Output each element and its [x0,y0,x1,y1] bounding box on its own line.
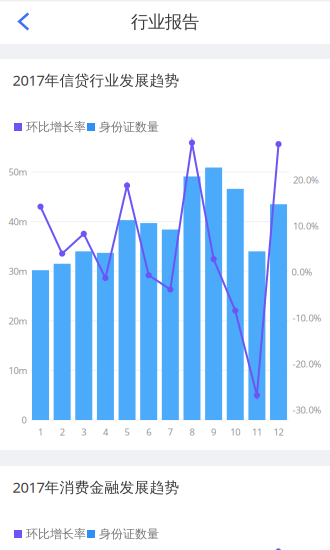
staticText: 8 [189,426,194,438]
staticText: 9 [211,426,216,438]
staticText: -20.0% [292,358,321,370]
staticText: 10m [8,364,27,377]
staticText: 3 [81,426,86,438]
staticText: 7 [168,426,173,438]
staticText: 30m [8,265,27,277]
staticText: 11 [252,426,262,438]
staticText: -10.0% [292,312,321,324]
staticText: 0 [21,414,26,426]
staticText: 50m [8,166,27,178]
staticText: 身份证数量 [99,120,159,134]
staticText: 0.0% [291,266,312,278]
staticText: 10.0% [293,220,319,232]
staticText: 行业报告 [131,11,199,33]
staticText: 12 [273,426,283,438]
staticText: 5 [125,426,130,438]
staticText: 2017年消费金融发展趋势 [12,477,179,497]
staticText: 4 [103,426,108,438]
staticText: 2017年信贷行业发展趋势 [12,70,179,90]
button[interactable]: 返回 [0,0,44,44]
staticText: -30.0% [292,404,321,416]
staticText: 2 [60,426,65,438]
staticText: 20.0% [293,174,319,186]
staticText: 20m [8,315,27,327]
staticText: 身份证数量 [99,527,159,541]
staticText: 环比增长率 [26,120,86,134]
staticText: 环比增长率 [26,527,86,541]
staticText: 6 [146,426,151,438]
staticText: 10 [230,426,240,438]
staticText: 40m [8,215,27,228]
staticText: 1 [38,426,43,438]
